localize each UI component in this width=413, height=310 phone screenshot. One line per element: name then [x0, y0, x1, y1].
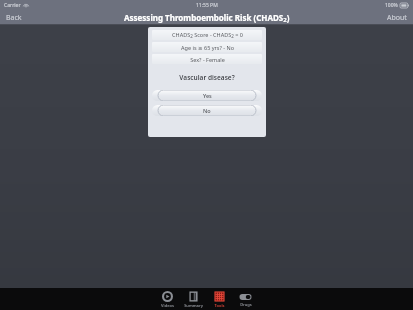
- staticText: Assessing Thromboembolic Risk (CHADS2): [124, 12, 290, 24]
- staticText: No: [203, 107, 211, 114]
- staticText: CHADS2 Score - CHADS2 = 0: [172, 31, 243, 40]
- button[interactable]: About: [381, 11, 413, 24]
- button[interactable]: Tools: [208, 290, 231, 309]
- staticText: Tools: [214, 303, 225, 308]
- staticText: 100%: [385, 2, 398, 9]
- staticText: Carrier: [4, 2, 21, 9]
- button[interactable]: No: [152, 105, 262, 116]
- other: Drugs: [239, 293, 252, 301]
- staticText: About: [387, 13, 407, 22]
- staticText: Drugs: [240, 302, 252, 307]
- button[interactable]: Yes: [152, 90, 262, 101]
- button[interactable]: Drugs: [234, 292, 257, 308]
- other: Summary: [188, 291, 199, 302]
- staticText: Yes: [203, 92, 212, 99]
- other: Tools: [214, 291, 225, 302]
- staticText: Age is ≥ 65 yrs? - No: [181, 44, 234, 51]
- staticText: Back: [6, 13, 22, 22]
- button[interactable]: Summary: [182, 290, 205, 309]
- staticText: Videos: [161, 303, 174, 308]
- staticText: 11:55 PM: [196, 2, 218, 9]
- other: Videos: [162, 291, 173, 302]
- button[interactable]: Back: [0, 11, 28, 24]
- button[interactable]: Videos: [156, 290, 179, 309]
- staticText: Summary: [184, 303, 203, 308]
- staticText: Vascular disease?: [152, 73, 262, 82]
- staticText: Sex? - Female: [190, 56, 225, 63]
